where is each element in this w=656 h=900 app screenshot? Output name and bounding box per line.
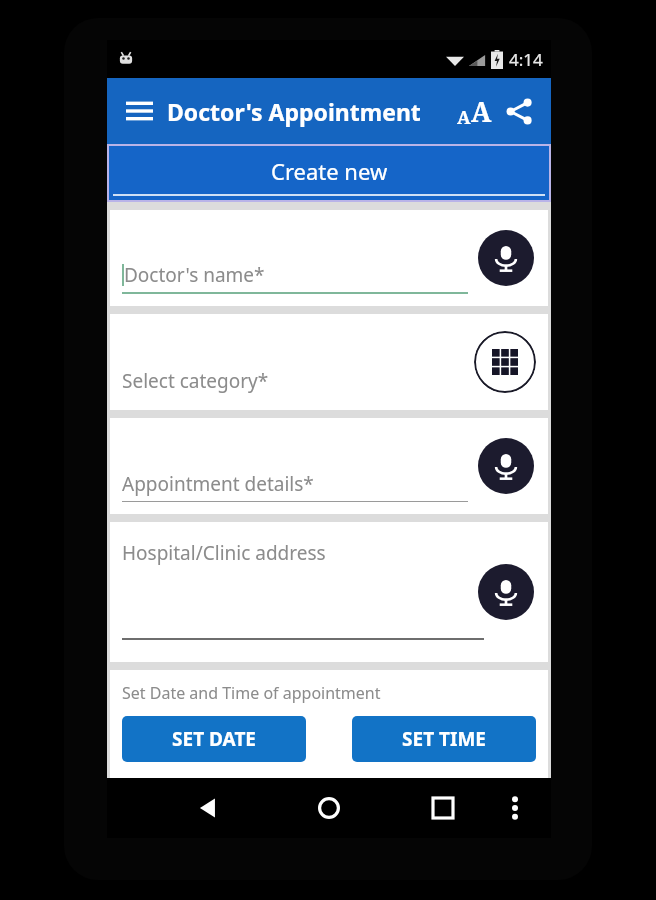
button[interactable]: Select category [474,331,536,393]
staticText: SET TIME [402,726,486,752]
button[interactable]: Voice input [478,438,534,494]
button[interactable]: Change text size [451,88,497,134]
button[interactable]: Appointment details* [110,418,548,514]
staticText: A [471,93,492,130]
button[interactable]: SET DATE [122,716,306,762]
button[interactable]: Hospital/Clinic address [110,522,548,662]
staticText: 4:14 [509,48,543,71]
staticText: SET DATE [172,726,256,752]
staticText: Set Date and Time of appointment [122,682,381,704]
button[interactable]: Select category* [110,314,548,410]
staticText: Doctor's Appointment [167,96,421,127]
button[interactable]: Share [497,89,541,133]
button[interactable]: Doctor's name* [110,210,548,306]
button[interactable]: Back [185,786,229,830]
staticText: Doctor's name* [124,262,265,288]
staticText: Select category* [122,368,269,394]
button[interactable]: Recent apps [421,786,465,830]
staticText: A [457,105,471,130]
staticText: Hospital/Clinic address [122,540,326,566]
staticText: Appointment details* [122,471,314,497]
button[interactable]: SET TIME [352,716,536,762]
button[interactable]: Voice input [478,564,534,620]
button[interactable]: Voice input [478,230,534,286]
button[interactable]: Create new [109,146,549,200]
staticText: Create new [271,156,388,186]
button[interactable]: More options [497,790,533,826]
button[interactable]: Open navigation menu [117,89,161,133]
button[interactable]: Home [307,786,351,830]
